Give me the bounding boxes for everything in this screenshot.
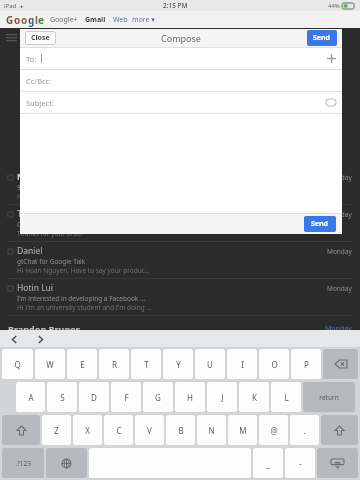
- staticText: W: [46, 359, 54, 370]
- staticText: I'm interested in developing a Facebook …: [17, 294, 146, 303]
- button[interactable]: C: [104, 415, 133, 445]
- staticText: P: [304, 359, 309, 370]
- staticText: X: [85, 425, 90, 436]
- button[interactable]: Send: [307, 30, 337, 46]
- staticText: Monday: [325, 324, 352, 334]
- button[interactable]: U: [195, 349, 225, 379]
- staticText: D: [91, 392, 97, 403]
- button[interactable]: K: [239, 382, 269, 412]
- button[interactable]: Change keyboard: [46, 448, 87, 478]
- staticText: Gmail: [85, 15, 106, 25]
- staticText: G: [6, 13, 14, 27]
- button[interactable]: P: [291, 349, 321, 379]
- staticText: K: [252, 392, 257, 403]
- button[interactable]: Shift: [2, 415, 40, 445]
- button[interactable]: S: [47, 382, 77, 412]
- button[interactable]: L: [271, 382, 301, 412]
- button[interactable]: Y: [163, 349, 193, 379]
- other: Add recipient: [327, 54, 336, 63]
- button[interactable]: To:: [20, 48, 342, 69]
- staticText: g: [28, 13, 35, 27]
- button[interactable]: N: [197, 415, 226, 445]
- staticText: -: [299, 458, 302, 469]
- button[interactable]: .: [290, 415, 319, 445]
- staticText: Hotin Lui: [17, 282, 54, 294]
- button[interactable]: Next field: [34, 333, 46, 345]
- staticText: Subject:: [26, 98, 54, 108]
- staticText: M: [239, 425, 247, 436]
- button[interactable]: Hide keyboard: [317, 448, 358, 478]
- staticText: Compose: [161, 32, 201, 44]
- button[interactable]: Subject:: [20, 92, 342, 113]
- staticText: Monday: [327, 247, 352, 256]
- staticText: O: [271, 359, 278, 370]
- staticText: U: [207, 359, 213, 370]
- button[interactable]: H: [175, 382, 205, 412]
- staticText: 2:15 PM: [163, 1, 188, 10]
- staticText: S: [60, 392, 65, 403]
- staticText: Trung Nguyen: [17, 208, 75, 220]
- staticText: J: [221, 392, 224, 403]
- staticText: Order confirmation: [17, 220, 77, 229]
- button[interactable]: Send: [304, 216, 336, 232]
- staticText: I: [241, 359, 244, 370]
- button[interactable]: J: [207, 382, 237, 412]
- button[interactable]: I: [227, 349, 257, 379]
- staticText: V: [147, 425, 152, 436]
- staticText: Web: [113, 15, 128, 25]
- button[interactable]: G: [143, 382, 173, 412]
- staticText: gtChat for Google Talk: [17, 257, 86, 266]
- staticText: Brandon Bruner: [8, 323, 80, 335]
- staticText: 9 Steps to improving: [17, 183, 80, 192]
- button[interactable]: D: [79, 382, 109, 412]
- button[interactable]: R: [99, 349, 129, 379]
- button[interactable]: Q: [2, 349, 33, 379]
- staticText: T: [144, 359, 149, 370]
- button[interactable]: Backspace: [323, 349, 358, 379]
- staticText: more ▾: [132, 15, 155, 25]
- staticText: To:: [26, 54, 37, 64]
- button[interactable]: A: [16, 382, 45, 412]
- button[interactable]: .?123: [2, 448, 44, 478]
- button[interactable]: T: [131, 349, 161, 379]
- button[interactable]: Shift: [321, 415, 358, 445]
- staticText: N: [208, 425, 215, 436]
- button[interactable]: O: [259, 349, 289, 379]
- other: Attach file: [326, 99, 336, 106]
- button[interactable]: F: [111, 382, 141, 412]
- button[interactable]: B: [166, 415, 195, 445]
- staticText: Z: [54, 425, 59, 436]
- staticText: o: [21, 13, 28, 27]
- button[interactable]: Close: [25, 31, 56, 45]
- staticText: Monday: [327, 210, 352, 219]
- button[interactable]: @: [259, 415, 288, 445]
- staticText: G: [155, 392, 161, 403]
- staticText: C: [116, 425, 122, 436]
- button[interactable]: E: [67, 349, 97, 379]
- button[interactable]: -: [285, 448, 315, 478]
- button[interactable]: _: [253, 448, 283, 478]
- staticText: E: [80, 359, 85, 370]
- staticText: sale.xapp@gmail.com ▴: [139, 340, 222, 350]
- staticText: return: [319, 393, 339, 402]
- staticText: Daniel: [17, 245, 43, 257]
- button[interactable]: W: [35, 349, 65, 379]
- button[interactable]: Cc/Bcc:: [20, 70, 342, 91]
- staticText: Y: [176, 359, 181, 370]
- staticText: Q: [14, 359, 21, 370]
- staticText: Google+: [50, 15, 78, 25]
- button[interactable]: V: [135, 415, 164, 445]
- staticText: .: [303, 425, 306, 436]
- button[interactable]: Previous field: [8, 333, 20, 345]
- button[interactable]: Z: [42, 415, 71, 445]
- staticText: 44%: [328, 2, 340, 10]
- staticText: Monday: [327, 173, 352, 182]
- staticText: Nguyen Tran: [17, 171, 72, 183]
- staticText: l: [35, 13, 38, 27]
- button[interactable]: X: [73, 415, 102, 445]
- button[interactable]: return: [303, 382, 355, 412]
- staticText: Close: [31, 33, 50, 43]
- button[interactable]: M: [228, 415, 257, 445]
